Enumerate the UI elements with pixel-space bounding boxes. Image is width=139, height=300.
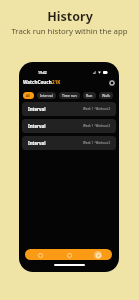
staticText: History <box>47 8 93 25</box>
staticText: Interval <box>28 123 46 129</box>
button[interactable]: Run <box>83 92 96 99</box>
button[interactable]: Interval <box>22 119 116 133</box>
staticText: All <box>26 93 31 98</box>
staticText: Run <box>86 93 93 98</box>
button[interactable]: Interval <box>22 136 116 150</box>
button[interactable]: Stats <box>54 249 83 260</box>
button[interactable]: Home <box>25 249 54 260</box>
button[interactable]: Time run <box>59 92 80 99</box>
button[interactable]: History <box>83 249 112 260</box>
staticText: Time run <box>62 93 77 98</box>
staticText: Track run history within the app <box>11 26 128 37</box>
staticText: Week 1 · Workout 2 <box>83 107 111 111</box>
staticText: Week 1 · Workout 2 <box>83 141 111 145</box>
button[interactable]: All <box>23 92 34 99</box>
staticText: WatchCouch <box>23 79 52 85</box>
button[interactable]: Settings <box>107 78 116 87</box>
staticText: 19:42 <box>38 70 47 75</box>
button[interactable]: Interval <box>22 102 116 116</box>
button[interactable]: Walk <box>99 92 113 99</box>
staticText: Interval <box>40 93 53 98</box>
staticText: Walk <box>102 93 110 98</box>
staticText: 21K <box>52 79 61 85</box>
staticText: Week 1 · Workout 2 <box>83 124 111 128</box>
button[interactable]: Interval <box>37 92 56 99</box>
staticText: Interval <box>28 106 46 112</box>
staticText: Interval <box>28 140 46 146</box>
